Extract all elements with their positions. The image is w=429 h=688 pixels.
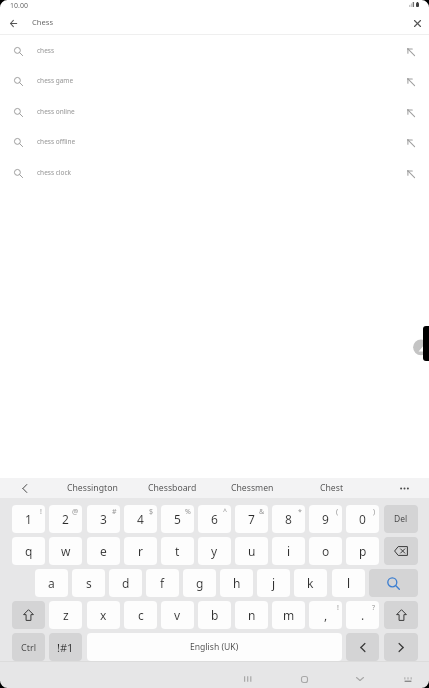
staticText: Chessmen [231, 482, 274, 494]
staticText: t [175, 543, 180, 559]
staticText: 6 [211, 511, 218, 527]
button[interactable]: Hide keyboard (back) [330, 661, 390, 688]
staticText: !#1 [57, 640, 74, 655]
button[interactable]: n [235, 601, 268, 629]
staticText: n [248, 607, 256, 623]
button[interactable]: , [309, 601, 342, 629]
button[interactable]: 0 [346, 505, 379, 533]
button[interactable]: g [183, 569, 216, 597]
button[interactable]: p [346, 537, 379, 565]
button[interactable]: 5 [161, 505, 194, 533]
button[interactable]: More options [391, 478, 417, 498]
button[interactable]: English (UK) [87, 633, 342, 661]
button[interactable]: 3 [87, 505, 120, 533]
button[interactable]: Move cursor right [384, 633, 418, 661]
staticText: q [25, 543, 33, 559]
button[interactable]: Backspace [384, 537, 418, 565]
button[interactable]: Insert chess clock [399, 158, 422, 188]
staticText: s [86, 575, 92, 591]
button[interactable]: Keyboard settings [393, 661, 423, 688]
button[interactable]: j [257, 569, 290, 597]
button[interactable]: t [161, 537, 194, 565]
button[interactable]: 1 [12, 505, 45, 533]
button[interactable]: Del [384, 505, 418, 533]
staticText: 10.00 [10, 1, 28, 11]
button[interactable]: Recent apps [217, 661, 277, 688]
button[interactable]: 8 [272, 505, 305, 533]
button[interactable]: chess clock [0, 158, 429, 188]
staticText: 9 [322, 511, 329, 527]
button[interactable]: 7 [235, 505, 268, 533]
button[interactable]: Back [2, 14, 24, 33]
staticText: Chessington [67, 482, 118, 494]
button[interactable]: 6 [198, 505, 231, 533]
button[interactable]: Shift [384, 601, 418, 629]
button[interactable]: 9 [309, 505, 342, 533]
staticText: ? [372, 603, 376, 613]
staticText: a [48, 575, 55, 591]
button[interactable]: Chessmen [212, 478, 292, 498]
staticText: $ [149, 507, 154, 517]
staticText: w [61, 543, 71, 559]
staticText: ( [336, 507, 339, 517]
staticText: l [347, 575, 351, 591]
button[interactable]: v [161, 601, 194, 629]
button[interactable]: Insert chess [399, 36, 422, 66]
staticText: x [100, 607, 107, 623]
button[interactable]: Insert chess offline [399, 127, 422, 157]
button[interactable]: q [12, 537, 45, 565]
button[interactable]: Search [369, 569, 418, 597]
button[interactable]: Move cursor left [346, 633, 379, 661]
button[interactable]: l [332, 569, 365, 597]
button[interactable]: z [49, 601, 82, 629]
button[interactable]: c [124, 601, 157, 629]
button[interactable]: b [198, 601, 231, 629]
button[interactable]: Previous suggestions [13, 478, 37, 498]
button[interactable]: Chessboard [132, 478, 212, 498]
button[interactable]: x [87, 601, 120, 629]
button[interactable]: Home [274, 661, 334, 688]
button[interactable]: Insert chess game [399, 66, 422, 96]
button[interactable]: chess game [0, 66, 429, 96]
button[interactable]: 2 [49, 505, 82, 533]
staticText: chess clock [37, 168, 72, 177]
button[interactable]: chess online [0, 97, 429, 127]
staticText: 0 [359, 511, 366, 527]
button[interactable]: y [198, 537, 231, 565]
button[interactable]: a [35, 569, 68, 597]
button[interactable]: u [235, 537, 268, 565]
button[interactable]: Shift [12, 601, 45, 629]
button[interactable]: k [294, 569, 327, 597]
button[interactable]: h [220, 569, 253, 597]
staticText: p [359, 543, 367, 559]
button[interactable]: Chessington [52, 478, 132, 498]
staticText: . [361, 607, 365, 623]
staticText: ^ [223, 507, 228, 517]
button[interactable]: 4 [124, 505, 157, 533]
button[interactable]: f [146, 569, 179, 597]
button[interactable]: !#1 [49, 633, 82, 661]
staticText: * [298, 507, 302, 517]
button[interactable]: d [109, 569, 142, 597]
button[interactable]: Insert chess online [399, 97, 422, 127]
button[interactable]: w [49, 537, 82, 565]
button[interactable]: i [272, 537, 305, 565]
button[interactable]: e [87, 537, 120, 565]
button[interactable]: Chest [292, 478, 372, 498]
staticText: Chess [32, 17, 54, 27]
button[interactable]: s [72, 569, 105, 597]
button[interactable]: r [124, 537, 157, 565]
button[interactable]: . [346, 601, 379, 629]
button[interactable]: chess offline [0, 127, 429, 157]
staticText: Chessboard [148, 482, 197, 494]
staticText: d [122, 575, 130, 591]
button[interactable]: Ctrl [12, 633, 45, 661]
button[interactable]: Clear search [406, 14, 428, 33]
staticText: f [160, 575, 165, 591]
button[interactable]: chess [0, 36, 429, 66]
button[interactable]: m [272, 601, 305, 629]
staticText: # [112, 507, 117, 517]
staticText: y [211, 543, 218, 559]
staticText: j [272, 575, 276, 591]
button[interactable]: o [309, 537, 342, 565]
